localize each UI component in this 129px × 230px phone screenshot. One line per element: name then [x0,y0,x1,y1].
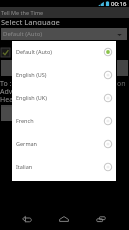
staticText: Default (Auto) [16,48,103,55]
button[interactable]: English (US) [12,64,116,87]
staticText: Select Language [1,17,60,25]
button[interactable]: Italian [12,156,116,179]
button[interactable]: German [12,133,116,156]
staticText: English (US) [16,71,103,78]
button[interactable]: Home [52,208,75,230]
staticText: English (UK) [16,94,103,101]
staticText: 00:16 [111,0,127,7]
staticText: Tell Me the Time [1,9,44,16]
button[interactable]: Recent apps [89,208,112,230]
staticText: Italian [16,163,103,170]
button[interactable]: English (UK) [12,87,116,110]
staticText: Default (Auto) [3,30,43,38]
button[interactable] [1,48,10,57]
staticText: To : [0,79,12,89]
staticText: Adv [0,87,13,97]
staticText: on [117,79,126,89]
button[interactable]: French [12,110,116,133]
staticText: German [16,140,103,147]
button[interactable]: Back [15,208,38,230]
staticText: French [16,117,103,124]
staticText: Hea [0,95,14,105]
button[interactable]: Default (Auto) [12,41,116,64]
button[interactable]: Default (Auto) [1,28,127,40]
